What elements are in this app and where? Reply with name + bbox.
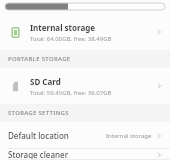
staticText: Default location: [8, 130, 106, 141]
button[interactable]: Storage cleaner: [0, 149, 170, 160]
staticText: Storage cleaner: [8, 149, 155, 160]
staticText: STORAGE SETTINGS: [8, 109, 69, 117]
staticText: SD Card: [30, 76, 61, 87]
button[interactable]: SD Card: [0, 68, 170, 104]
button[interactable]: Default location: [0, 122, 170, 149]
staticText: Internal storage: [106, 132, 152, 140]
staticText: PORTABLE STORAGE: [8, 55, 71, 63]
staticText: Total: 64.00GB, free: 38.49GB: [30, 35, 112, 43]
staticText: Total: 59.45GB, free: 36.07GB: [30, 89, 112, 97]
staticText: Internal storage: [30, 22, 96, 33]
button[interactable]: Internal storage: [0, 14, 170, 50]
